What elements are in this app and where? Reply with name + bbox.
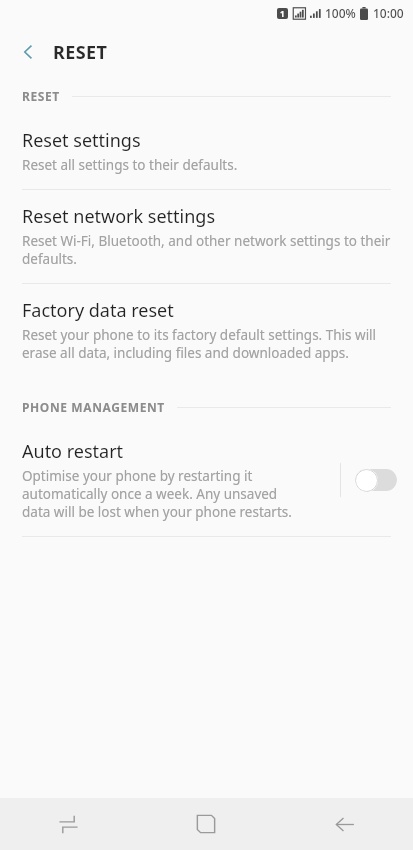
button[interactable]: Recents: [0, 798, 137, 850]
button[interactable]: Back: [275, 798, 413, 850]
staticText: Reset all settings to their defaults.: [22, 156, 238, 174]
staticText: RESET: [22, 88, 60, 104]
staticText: PHONE MANAGEMENT: [22, 399, 165, 415]
staticText: Optimise your phone by restarting it aut…: [22, 467, 292, 521]
button[interactable]: Factory data reset: [0, 284, 413, 377]
button[interactable]: Reset settings: [0, 114, 413, 189]
button[interactable]: Back: [8, 32, 48, 72]
button[interactable]: Home: [137, 798, 275, 850]
staticText: RESET: [53, 40, 108, 65]
staticText: Reset your phone to its factory default …: [22, 326, 377, 362]
staticText: Reset settings: [22, 128, 141, 153]
staticText: Factory data reset: [22, 298, 174, 323]
staticText: 10:00: [373, 5, 404, 21]
staticText: Reset Wi-Fi, Bluetooth, and other networ…: [22, 232, 391, 268]
button[interactable]: Auto restart: [0, 425, 413, 536]
staticText: 1: [280, 8, 285, 19]
button[interactable]: Auto restart toggle: [355, 468, 397, 492]
staticText: Reset network settings: [22, 204, 216, 229]
staticText: 100%: [325, 5, 356, 21]
button[interactable]: Reset network settings: [0, 190, 413, 283]
staticText: Auto restart: [22, 439, 124, 464]
